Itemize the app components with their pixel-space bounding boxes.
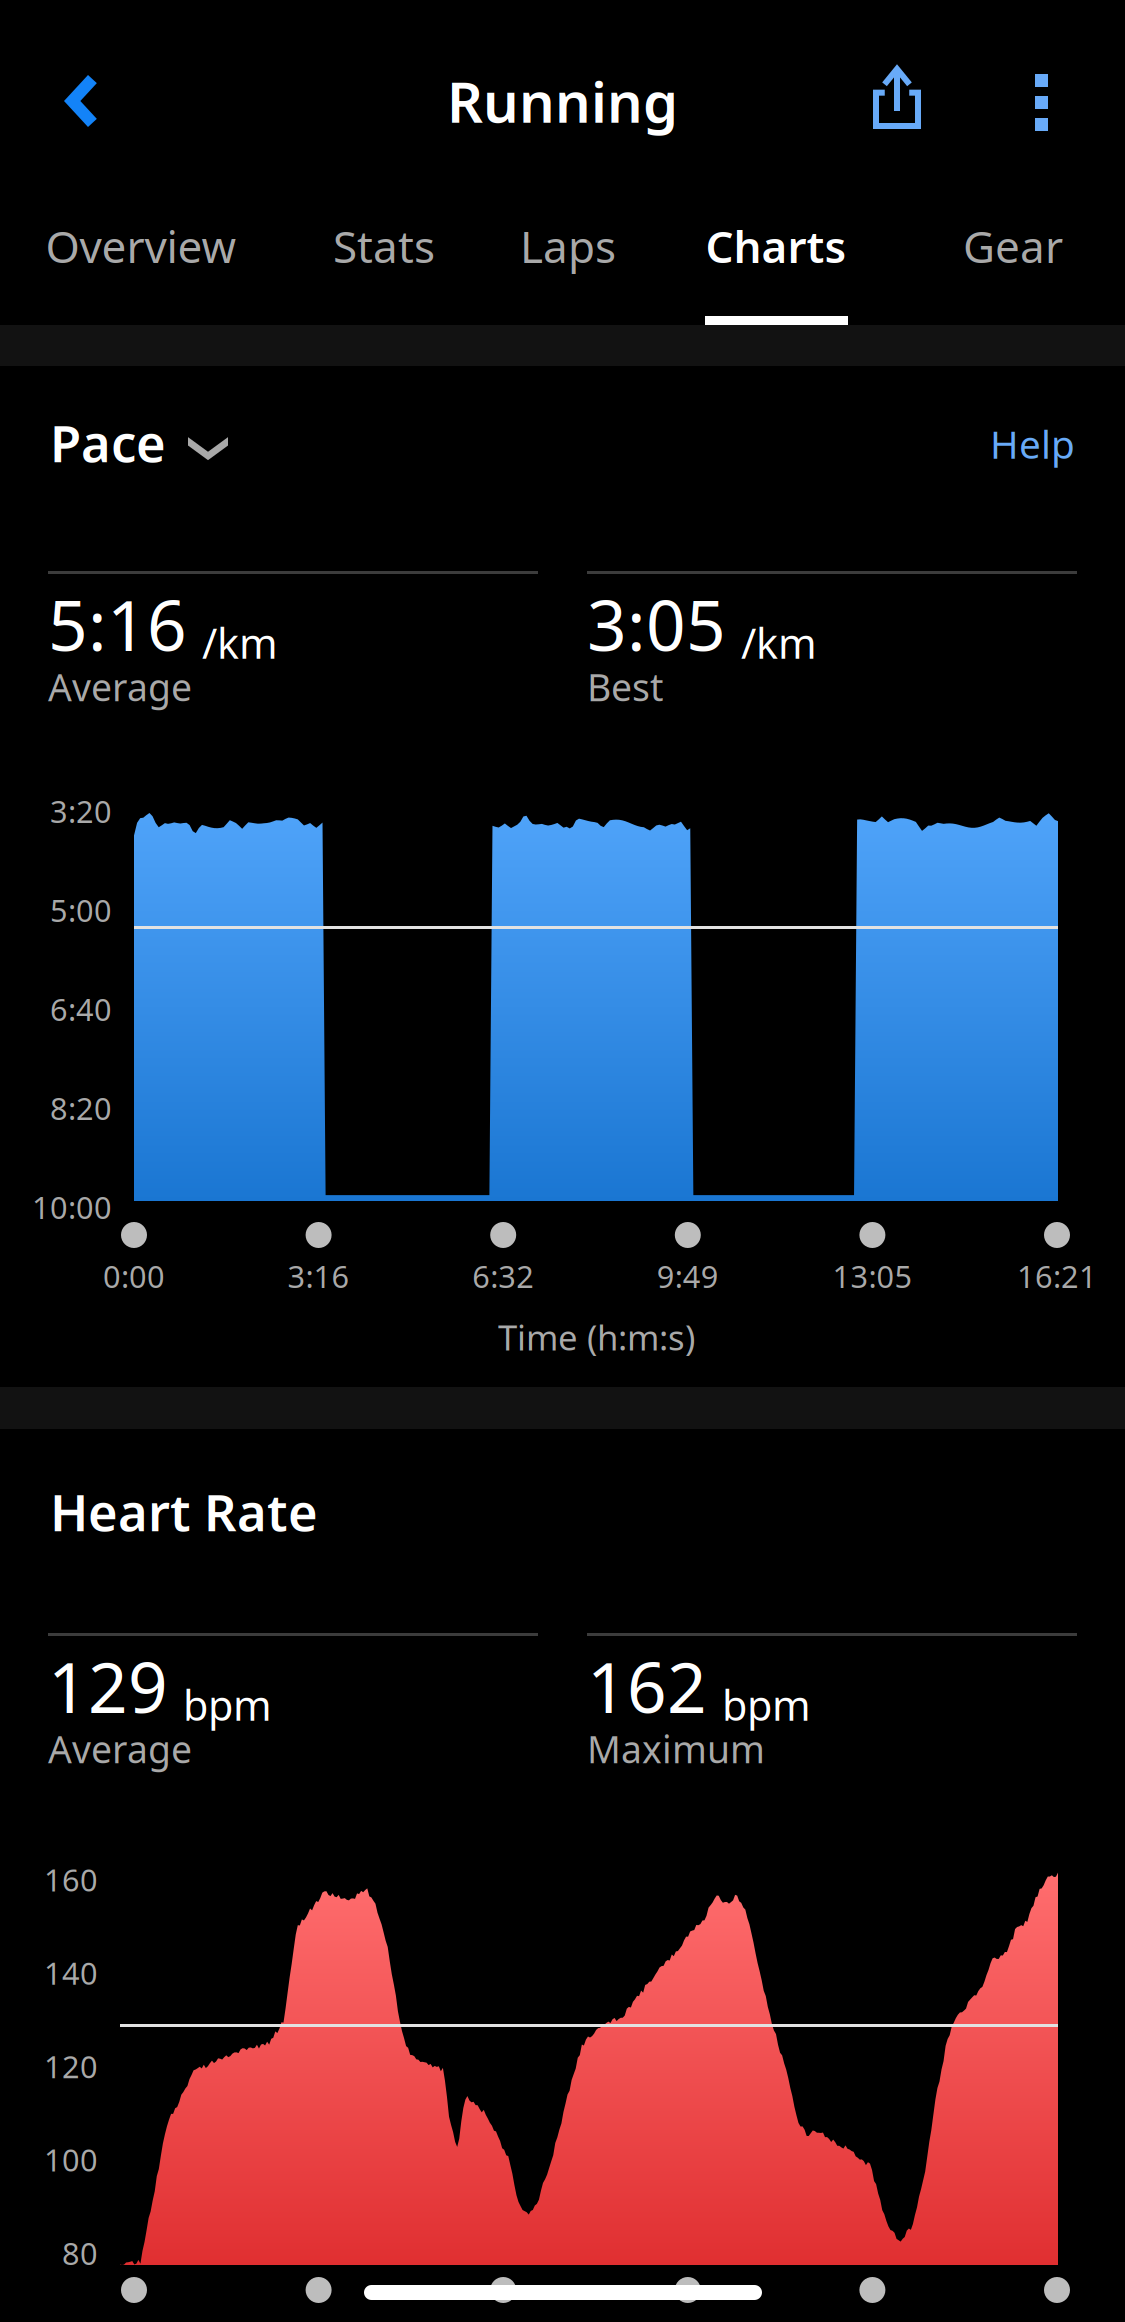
staticText: 100: [44, 2139, 98, 2180]
staticText: Overview: [45, 217, 236, 275]
staticText: Average: [48, 1724, 192, 1774]
staticText: 16:21: [1017, 1256, 1097, 1296]
staticText: 160: [44, 1859, 98, 1900]
staticText: 120: [44, 2046, 98, 2087]
staticText: 5:16: [48, 578, 187, 670]
staticText: Pace: [50, 409, 166, 476]
staticText: 5:00: [50, 890, 112, 930]
staticText: Heart Rate: [50, 1478, 318, 1545]
staticText: 0:00: [103, 1256, 165, 1296]
staticText: /km: [202, 615, 278, 670]
staticText: 3:16: [288, 1256, 350, 1296]
staticText: Best: [587, 662, 663, 712]
staticText: 80: [62, 2233, 98, 2273]
staticText: 8:20: [50, 1088, 112, 1128]
staticText: Average: [48, 662, 192, 712]
button[interactable]: Overview: [26, 180, 256, 312]
staticText: bpm: [183, 1677, 272, 1732]
staticText: 9:49: [657, 1256, 719, 1296]
staticText: /km: [741, 615, 817, 670]
staticText: 162: [587, 1640, 707, 1732]
staticText: 13:05: [832, 1256, 912, 1296]
staticText: 3:20: [50, 791, 112, 831]
staticText: 6:40: [50, 989, 112, 1029]
button[interactable]: Pace: [0, 379, 252, 506]
staticText: 3:05: [587, 578, 726, 670]
button[interactable]: Back: [0, 27, 138, 175]
staticText: 140: [44, 1952, 98, 1993]
staticText: Maximum: [587, 1724, 765, 1774]
button[interactable]: Charts: [661, 180, 891, 312]
button[interactable]: Gear: [898, 180, 1125, 312]
button[interactable]: More options: [995, 36, 1088, 169]
button[interactable]: Help: [960, 386, 1125, 501]
staticText: Time (h:m:s): [498, 1314, 695, 1360]
staticText: Gear: [963, 217, 1063, 275]
staticText: Laps: [520, 217, 616, 275]
staticText: 6:32: [472, 1256, 534, 1296]
staticText: bpm: [722, 1677, 811, 1732]
button[interactable]: Stats: [269, 180, 499, 312]
staticText: Help: [990, 418, 1075, 469]
staticText: Charts: [705, 217, 846, 275]
button[interactable]: Laps: [453, 180, 683, 312]
staticText: 10:00: [32, 1187, 112, 1227]
staticText: Running: [447, 64, 678, 138]
staticText: Stats: [333, 217, 435, 275]
staticText: 129: [48, 1640, 168, 1732]
button[interactable]: Share: [837, 35, 957, 163]
